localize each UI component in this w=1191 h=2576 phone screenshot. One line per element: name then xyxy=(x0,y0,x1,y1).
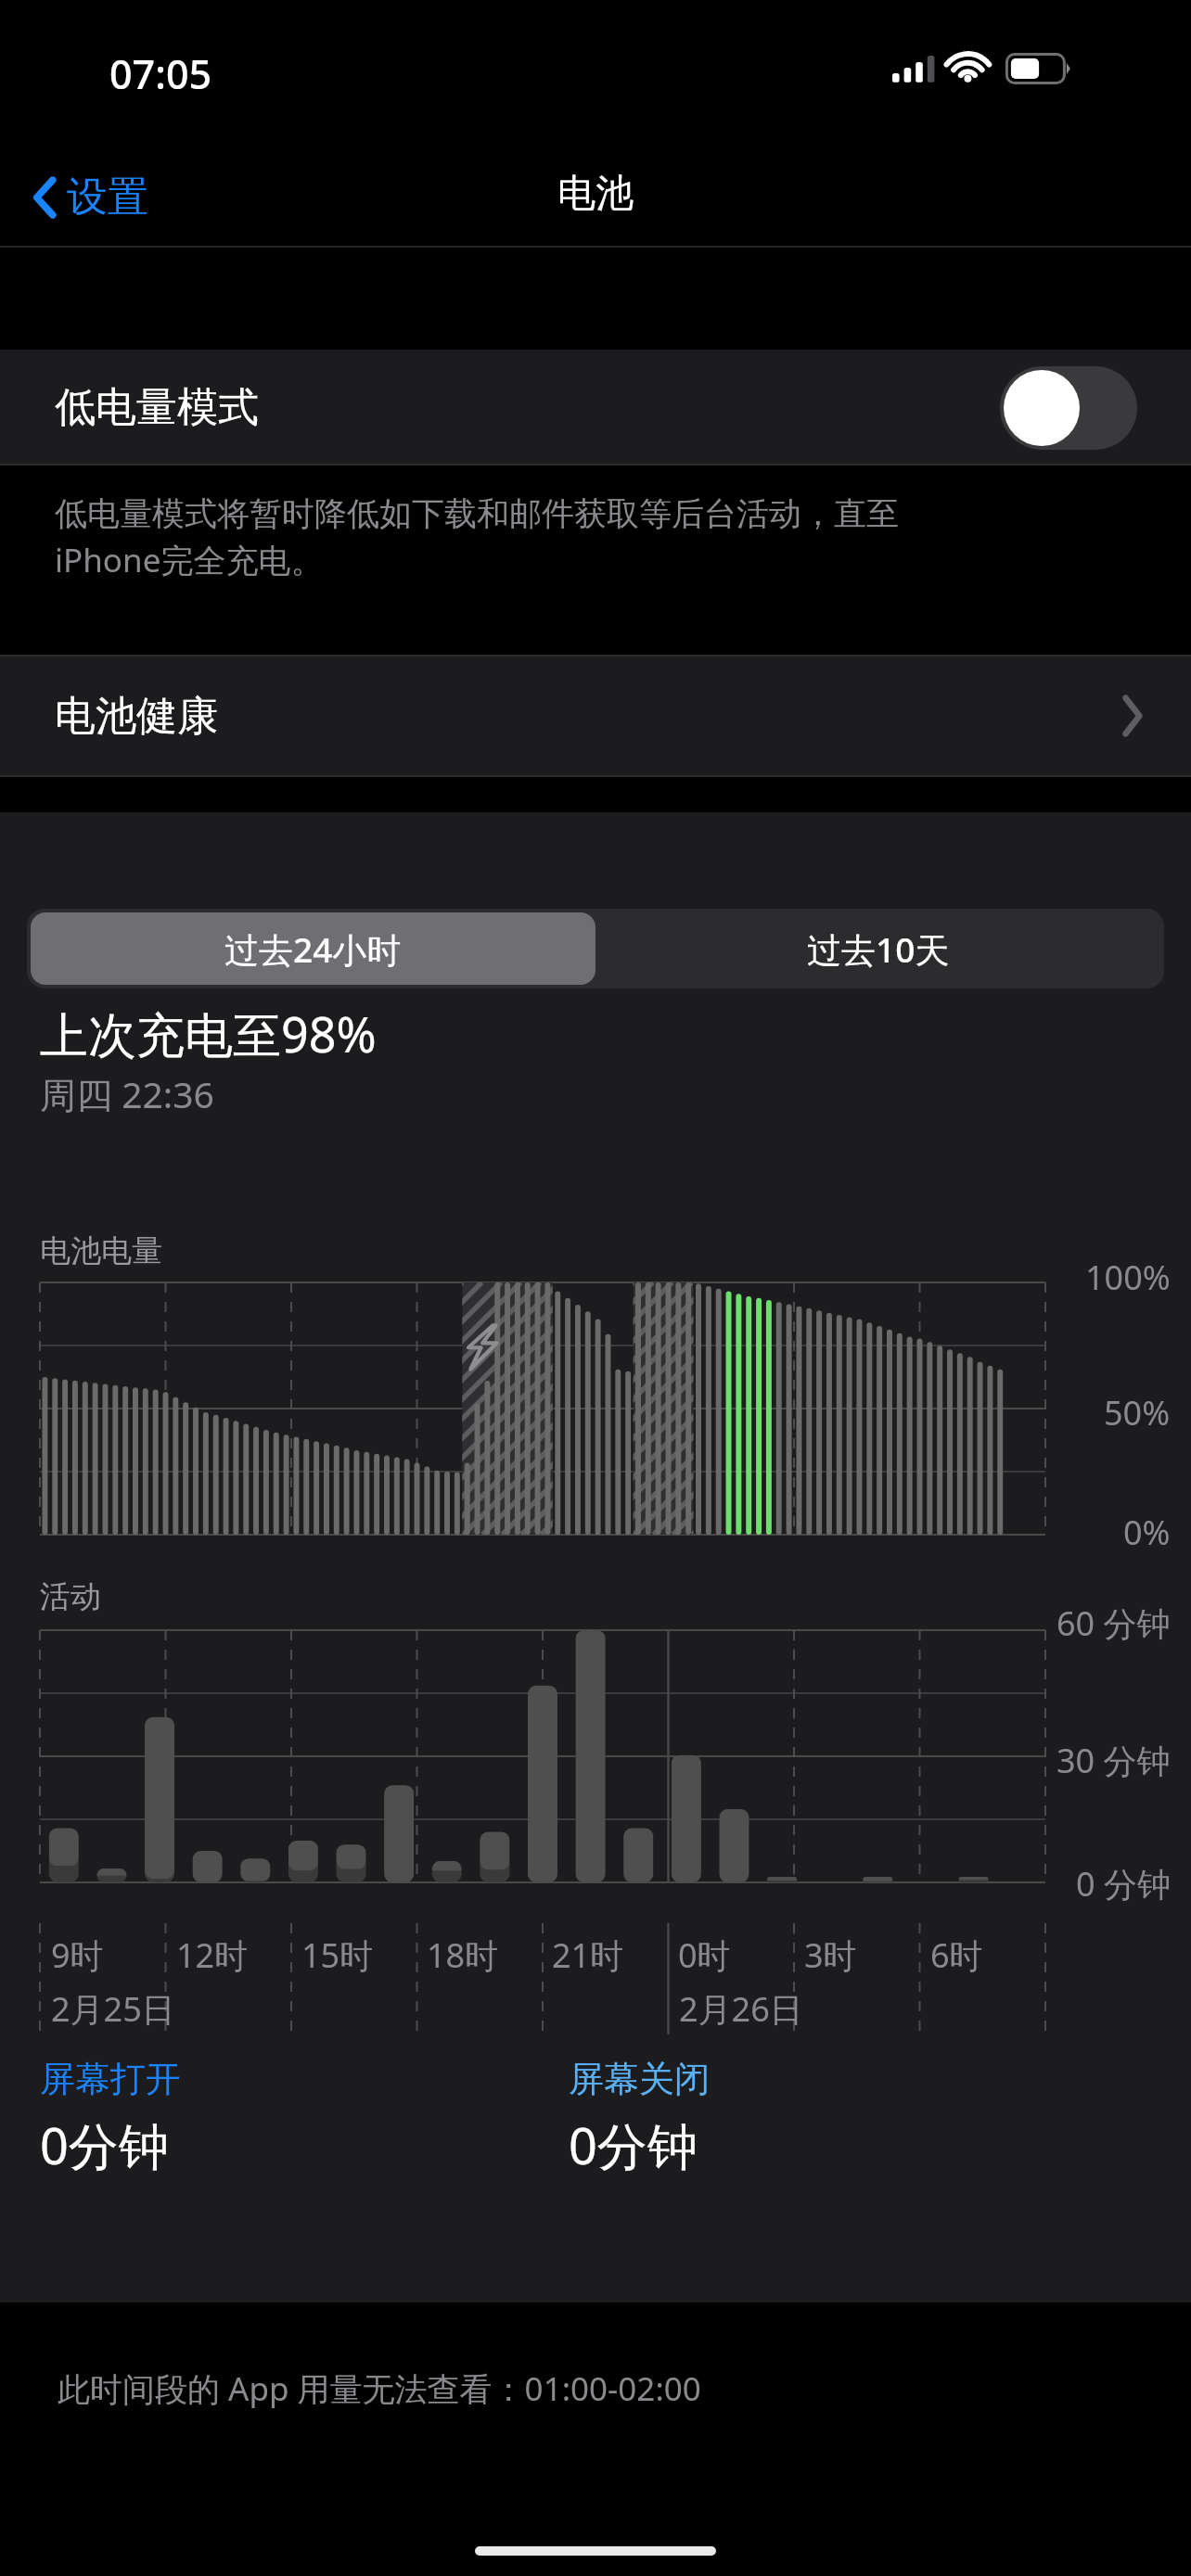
staticText: 12时 xyxy=(176,1932,249,1978)
staticText: 0% xyxy=(1123,1510,1171,1555)
staticText: 电池电量 xyxy=(40,1231,162,1270)
button[interactable]: 设置 xyxy=(19,160,163,234)
staticText: 过去10天 xyxy=(807,925,950,973)
staticText: 50% xyxy=(1104,1390,1171,1435)
staticText: 活动 xyxy=(40,1577,101,1616)
button[interactable]: 过去10天 xyxy=(595,912,1160,985)
staticText: 周四 22:36 xyxy=(40,1069,214,1118)
staticText: 屏幕关闭 xyxy=(569,2057,710,2101)
staticText: 100% xyxy=(1085,1255,1171,1300)
staticText: 30 分钟 xyxy=(1057,1738,1171,1783)
staticText: 0分钟 xyxy=(40,2111,169,2179)
staticText: 9时 xyxy=(51,1932,104,1978)
staticText: 0分钟 xyxy=(569,2111,698,2179)
staticText: 15时 xyxy=(301,1932,374,1978)
staticText: 18时 xyxy=(427,1932,499,1978)
button[interactable]: 过去24小时 xyxy=(31,912,595,985)
staticText: 07:05 xyxy=(109,46,212,101)
staticText: 2月26日 xyxy=(679,1986,803,2032)
staticText: 6时 xyxy=(930,1932,983,1978)
staticText: 60 分钟 xyxy=(1057,1600,1171,1646)
staticText: 0 分钟 xyxy=(1076,1861,1171,1906)
staticText: 电池健康 xyxy=(55,691,218,742)
staticText: 屏幕打开 xyxy=(40,2057,181,2101)
staticText: 过去24小时 xyxy=(224,925,402,973)
other: 信号 Wi-Fi 电池 xyxy=(892,48,1124,85)
staticText: 21时 xyxy=(552,1932,624,1978)
staticText: 上次充电至98% xyxy=(40,1001,377,1066)
staticText: 0时 xyxy=(678,1932,731,1978)
staticText: 此时间段的 App 用量无法查看：01:00-02:00 xyxy=(58,2366,701,2411)
staticText: 设置 xyxy=(67,172,148,223)
staticText: 电池 xyxy=(557,170,634,218)
button[interactable]: 屏幕打开 xyxy=(40,2057,569,2179)
button[interactable]: 低电量模式开关 xyxy=(1000,366,1137,450)
staticText: 低电量模式将暂时降低如下载和邮件获取等后台活动，直至 iPhone完全充电。 xyxy=(55,493,1140,582)
button[interactable]: 屏幕关闭 xyxy=(569,2057,1151,2179)
staticText: 2月25日 xyxy=(51,1986,175,2032)
button[interactable]: 低电量模式 xyxy=(0,350,1191,465)
button[interactable]: 电池健康 xyxy=(0,655,1191,777)
staticText: 低电量模式 xyxy=(55,382,259,433)
staticText: 3时 xyxy=(804,1932,857,1978)
